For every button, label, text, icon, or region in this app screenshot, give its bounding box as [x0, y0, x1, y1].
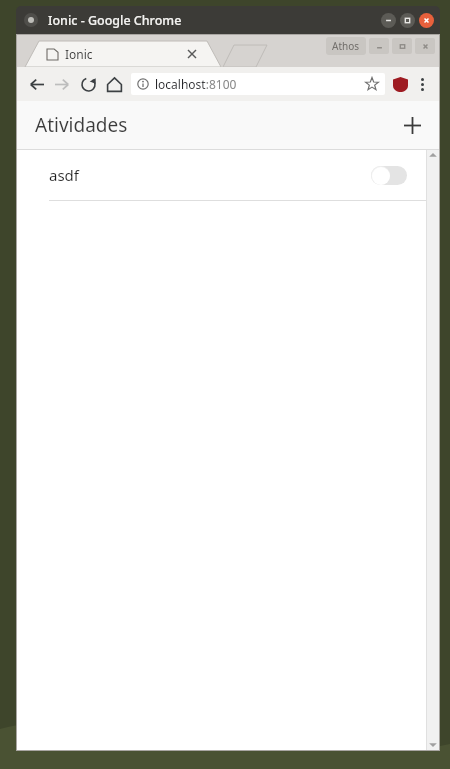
button[interactable]: Athos: [326, 37, 366, 55]
button[interactable]: Maximize window: [392, 38, 412, 54]
button[interactable]: Close tab: [185, 47, 199, 61]
button[interactable]: localhost:8100: [131, 73, 385, 95]
staticText: Athos: [332, 39, 360, 53]
button[interactable]: Minimize window: [369, 38, 389, 54]
button[interactable]: Maximize: [400, 13, 415, 28]
button[interactable]: Close: [419, 13, 434, 28]
button[interactable]: Reload: [75, 71, 101, 97]
button[interactable]: Home: [101, 71, 127, 97]
staticText: Ionic: [65, 46, 93, 62]
button[interactable]: Add activity: [395, 108, 429, 142]
button[interactable]: Bookmark: [365, 77, 379, 91]
staticText: Atividades: [35, 112, 128, 138]
button[interactable]: Minimize: [381, 13, 396, 28]
staticText: Ionic - Google Chrome: [48, 12, 182, 29]
button[interactable]: Close window: [415, 38, 435, 54]
button[interactable]: Toggle activity: [371, 166, 407, 185]
staticText: asdf: [49, 165, 79, 185]
button[interactable]: Forward: [49, 71, 75, 97]
button[interactable]: Chrome menu: [411, 73, 433, 95]
button[interactable]: Extension: [389, 73, 411, 95]
button[interactable]: Ionic: [25, 41, 221, 67]
staticText: localhost:8100: [155, 76, 237, 92]
button[interactable]: Back: [23, 71, 49, 97]
button[interactable]: asdf: [17, 150, 427, 200]
